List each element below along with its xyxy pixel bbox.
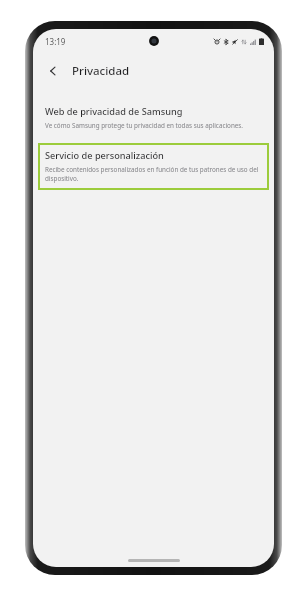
button[interactable]: Atrás bbox=[40, 58, 66, 84]
button[interactable]: Servicio de personalización bbox=[38, 143, 269, 190]
staticText: Servicio de personalización bbox=[45, 149, 164, 162]
staticText: Ve cómo Samsung protege tu privacidad en… bbox=[45, 121, 244, 130]
staticText: Privacidad bbox=[72, 63, 130, 79]
staticText: Web de privacidad de Samsung bbox=[45, 105, 183, 118]
button[interactable]: Web de privacidad de Samsung bbox=[33, 103, 274, 136]
staticText: 13:19 bbox=[45, 36, 66, 47]
staticText: Recibe contenidos personalizados en func… bbox=[45, 165, 262, 183]
